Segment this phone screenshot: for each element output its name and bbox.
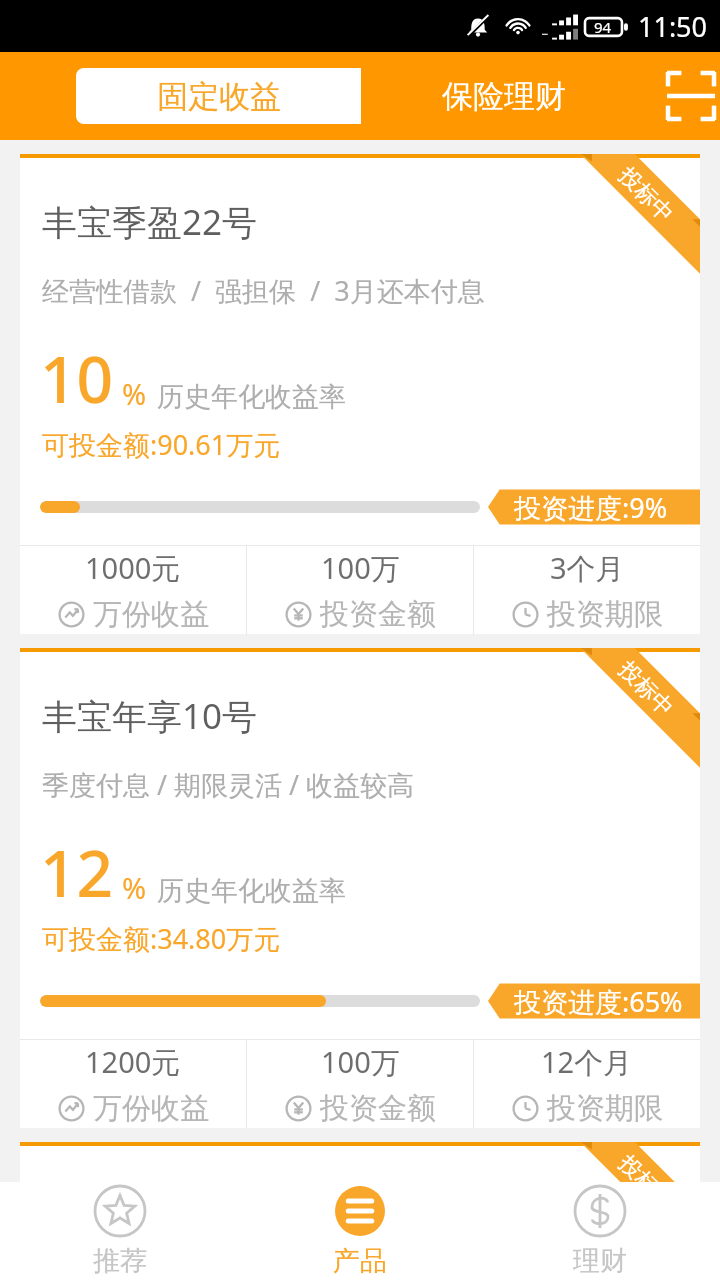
- staticText: 可投金额:90.61万元: [42, 426, 281, 463]
- button[interactable]: 3个月: [474, 546, 700, 634]
- button[interactable]: 丰宝年享10号: [20, 648, 700, 1128]
- button[interactable]: 1000元: [20, 546, 246, 634]
- staticText: 3个月: [550, 548, 625, 588]
- staticText: 12个月: [541, 1042, 633, 1082]
- button[interactable]: 100万: [247, 1040, 473, 1128]
- button[interactable]: 100万: [247, 546, 473, 634]
- staticText: 投标中: [613, 656, 679, 722]
- staticText: 投标中: [613, 1150, 679, 1216]
- staticText: 1000元: [85, 548, 181, 588]
- staticText: 万份收益: [93, 596, 209, 633]
- staticText: 投资期限: [547, 1090, 663, 1127]
- staticText: 固定收益: [157, 77, 281, 116]
- staticText: 94: [594, 17, 612, 37]
- button[interactable]: 理财: [480, 1182, 720, 1280]
- staticText: 投标中: [613, 162, 679, 228]
- staticText: 万份收益: [93, 1090, 209, 1127]
- button[interactable]: 推荐: [0, 1182, 240, 1280]
- button[interactable]: 扫一扫: [664, 69, 718, 123]
- staticText: 推荐: [93, 1244, 147, 1278]
- staticText: 保险理财: [442, 77, 566, 116]
- staticText: 投资金额: [320, 596, 436, 633]
- staticText: %: [122, 374, 147, 413]
- staticText: 12: [40, 829, 114, 916]
- staticText: 丰宝季盈22号: [42, 198, 258, 246]
- staticText: 投资进度:9%: [514, 489, 668, 526]
- staticText: 100万: [321, 1042, 400, 1082]
- staticText: 1200元: [85, 1042, 181, 1082]
- staticText: 10: [40, 335, 114, 422]
- staticText: 理财: [573, 1244, 627, 1278]
- button[interactable]: [20, 1142, 700, 1182]
- staticText: 历史年化收益率: [157, 380, 346, 414]
- staticText: 11:50: [638, 8, 708, 45]
- staticText: 投资进度:65%: [514, 983, 683, 1020]
- button[interactable]: 固定收益: [76, 68, 361, 124]
- button[interactable]: 产品: [240, 1182, 480, 1280]
- button[interactable]: 12个月: [474, 1040, 700, 1128]
- button[interactable]: 1200元: [20, 1040, 246, 1128]
- staticText: 投资期限: [547, 596, 663, 633]
- staticText: %: [122, 868, 147, 907]
- staticText: 投资金额: [320, 1090, 436, 1127]
- staticText: 季度付息 / 期限灵活 / 收益较高: [42, 766, 415, 803]
- staticText: 产品: [333, 1244, 387, 1278]
- button[interactable]: 保险理财: [361, 68, 646, 124]
- button[interactable]: 丰宝季盈22号: [20, 154, 700, 634]
- staticText: 历史年化收益率: [157, 874, 346, 908]
- staticText: 经营性借款 / 强担保 / 3月还本付息: [42, 272, 485, 309]
- staticText: 丰宝年享10号: [42, 692, 258, 740]
- staticText: 可投金额:34.80万元: [42, 920, 281, 957]
- staticText: 100万: [321, 548, 400, 588]
